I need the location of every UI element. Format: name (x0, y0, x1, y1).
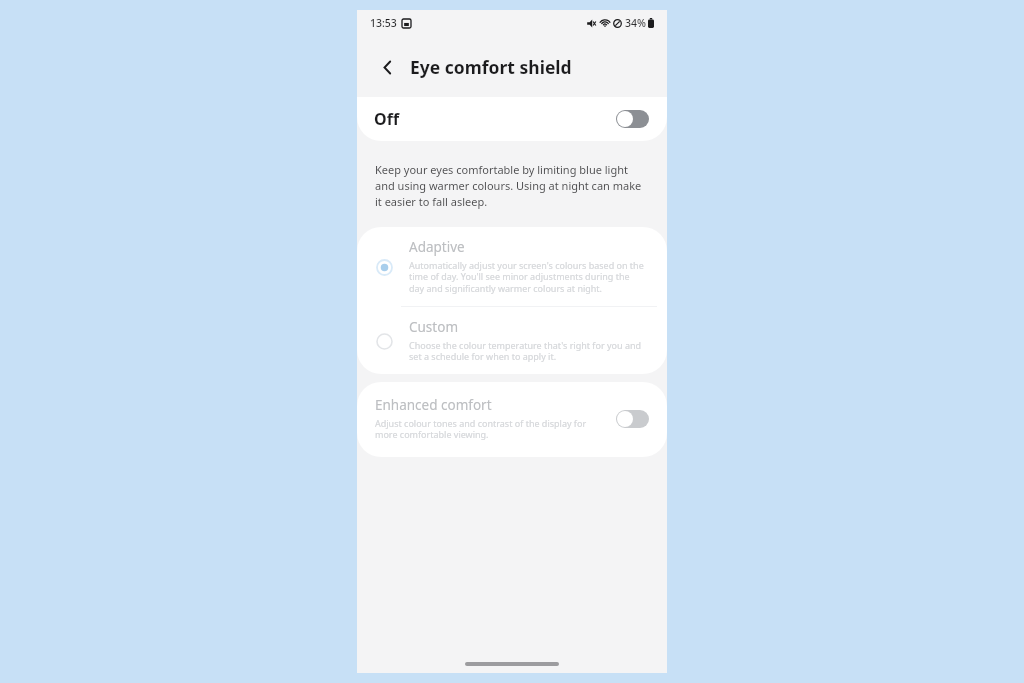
staticText: 13:53 (370, 16, 397, 30)
staticText: 34% (625, 16, 646, 30)
staticText: Adjust colour tones and contrast of the … (375, 417, 604, 441)
button[interactable]: Adaptive (357, 227, 667, 306)
button[interactable]: Off (357, 97, 667, 141)
staticText: Choose the colour temperature that's rig… (409, 339, 647, 363)
staticText: Enhanced comfort (375, 396, 492, 414)
staticText: Keep your eyes comfortable by limiting b… (375, 162, 645, 209)
staticText: Eye comfort shield (410, 55, 572, 79)
staticText: Off (374, 108, 400, 130)
button[interactable]: Enhanced comfort (357, 382, 667, 457)
staticText: Adaptive (409, 238, 465, 256)
staticText: Automatically adjust your screen's colou… (409, 259, 647, 295)
staticText: Custom (409, 318, 459, 336)
button[interactable]: Back (373, 53, 401, 81)
button[interactable]: Custom (357, 307, 667, 374)
